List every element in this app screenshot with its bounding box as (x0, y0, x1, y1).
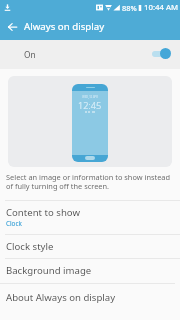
button[interactable]: Back (0, 15, 24, 39)
button[interactable]: About Always on display (0, 283, 180, 312)
staticText: 88% (122, 3, 137, 13)
staticText: Select an image or information to show i… (6, 172, 171, 191)
staticText: WED, 12 APR (82, 95, 98, 99)
staticText: Clock style (6, 240, 54, 253)
button[interactable]: Content to show (0, 199, 180, 235)
staticText: 12:45 (78, 99, 102, 112)
button[interactable]: On (0, 40, 180, 69)
staticText: On (24, 49, 36, 60)
staticText: Clock (6, 219, 22, 228)
button[interactable]: Clock style (0, 234, 180, 258)
staticText: Background image (6, 264, 92, 277)
staticText: About Always on display (6, 291, 116, 304)
staticText: Content to show (6, 206, 80, 219)
button[interactable]: Background image (0, 258, 180, 283)
staticText: 10:44 AM (144, 2, 179, 13)
staticText: Always on display (24, 20, 105, 33)
